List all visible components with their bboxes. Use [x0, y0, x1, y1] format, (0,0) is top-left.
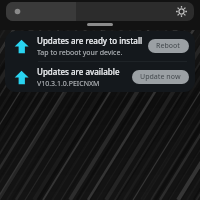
button[interactable]: Brightness — [6, 2, 194, 21]
staticText: V10.3.1.0.PEICNXM — [37, 79, 100, 89]
staticText: Tap to reboot your device. — [37, 48, 123, 58]
staticText: Reboot — [156, 41, 181, 51]
button[interactable]: Updates are ready to install — [5, 31, 195, 61]
staticText: Update now — [140, 72, 181, 82]
button[interactable]: Reboot — [148, 39, 189, 53]
button[interactable]: Updates are available — [5, 62, 195, 92]
button[interactable]: Update now — [132, 70, 189, 84]
staticText: Updates are available — [37, 66, 120, 77]
staticText: Updates are ready to install — [37, 35, 143, 46]
